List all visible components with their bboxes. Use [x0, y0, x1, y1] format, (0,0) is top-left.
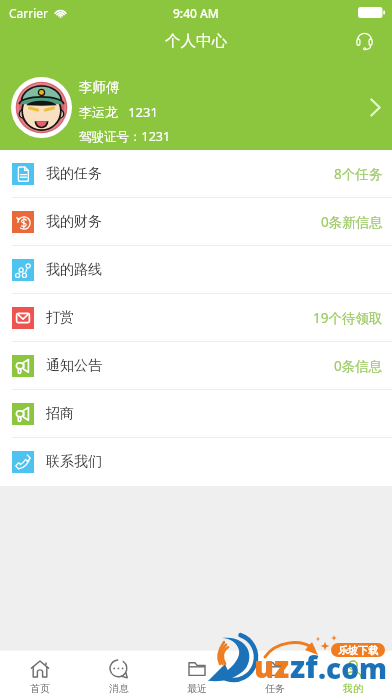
button[interactable]: 我的 [314, 651, 392, 696]
staticText: 消息 [109, 682, 129, 695]
staticText: 我的路线 [46, 261, 102, 279]
staticText: 我的任务 [46, 165, 102, 183]
button[interactable]: 通知公告 [0, 342, 392, 390]
button[interactable]: 最近 [158, 651, 236, 696]
button[interactable]: 首页 [0, 651, 79, 696]
staticText: 李师傅 [79, 79, 120, 96]
button[interactable]: 招商 [0, 390, 392, 438]
staticText: 首页 [30, 682, 50, 695]
staticText: 我的财务 [46, 213, 102, 231]
button[interactable]: 我的任务 [0, 150, 392, 198]
staticText: 李运龙 1231 [79, 103, 158, 121]
staticText: 任务 [265, 682, 285, 695]
staticText: 联系我们 [46, 453, 102, 471]
button[interactable]: 我的路线 [0, 246, 392, 294]
button[interactable]: 我的财务 [0, 198, 392, 246]
button[interactable]: 消息 [79, 651, 158, 696]
staticText: 9:40 AM [173, 5, 219, 21]
staticText: 驾驶证号：1231 [79, 128, 171, 145]
staticText: 打赏 [46, 309, 74, 327]
staticText: 最近 [187, 682, 207, 695]
staticText: 8个任务 [334, 165, 383, 183]
staticText: 个人中心 [165, 31, 227, 51]
staticText: 通知公告 [46, 357, 102, 375]
staticText: 我的 [343, 682, 363, 695]
button[interactable]: 联系我们 [0, 438, 392, 486]
button[interactable]: 打赏 [0, 294, 392, 342]
staticText: 招商 [46, 405, 74, 423]
staticText: .com [318, 649, 388, 687]
staticText: uz [254, 646, 290, 687]
staticText: zf [290, 646, 318, 687]
staticText: 0条新信息 [321, 213, 383, 231]
button[interactable]: 李师傅 [0, 65, 392, 150]
staticText: 19个待领取 [313, 309, 383, 327]
staticText: 0条信息 [334, 357, 383, 375]
button[interactable]: Customer service [347, 23, 381, 57]
button[interactable]: 任务 [236, 651, 314, 696]
staticText: 乐坡下载 [338, 644, 378, 657]
staticText: Carrier [9, 5, 49, 21]
